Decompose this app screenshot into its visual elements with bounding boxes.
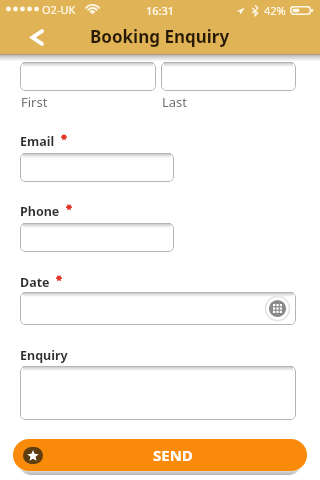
staticText: Phone bbox=[20, 203, 60, 220]
button[interactable]: Pick date bbox=[20, 292, 296, 325]
button[interactable] bbox=[20, 62, 156, 91]
button[interactable]: SEND bbox=[13, 439, 307, 471]
button[interactable] bbox=[161, 62, 296, 91]
button[interactable] bbox=[20, 366, 296, 420]
button[interactable] bbox=[20, 153, 174, 182]
staticText: Date bbox=[20, 274, 50, 291]
staticText: O2-UK bbox=[42, 2, 76, 17]
button[interactable] bbox=[20, 223, 174, 252]
staticText: Enquiry bbox=[20, 347, 68, 364]
button[interactable]: Pick date bbox=[265, 296, 290, 321]
staticText: First bbox=[21, 93, 48, 111]
staticText: 16:31 bbox=[146, 3, 175, 18]
staticText: Booking Enquiry bbox=[90, 25, 230, 48]
staticText: SEND bbox=[153, 445, 193, 465]
staticText: Last bbox=[162, 93, 188, 111]
staticText: Email bbox=[20, 133, 55, 150]
staticText: 42% bbox=[264, 3, 286, 18]
button[interactable]: Back bbox=[0, 20, 56, 54]
